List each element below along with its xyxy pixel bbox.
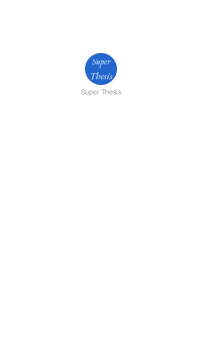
staticText: Super Thesis: [81, 88, 121, 96]
staticText: Super: [92, 56, 110, 67]
staticText: Thesis: [89, 69, 112, 82]
